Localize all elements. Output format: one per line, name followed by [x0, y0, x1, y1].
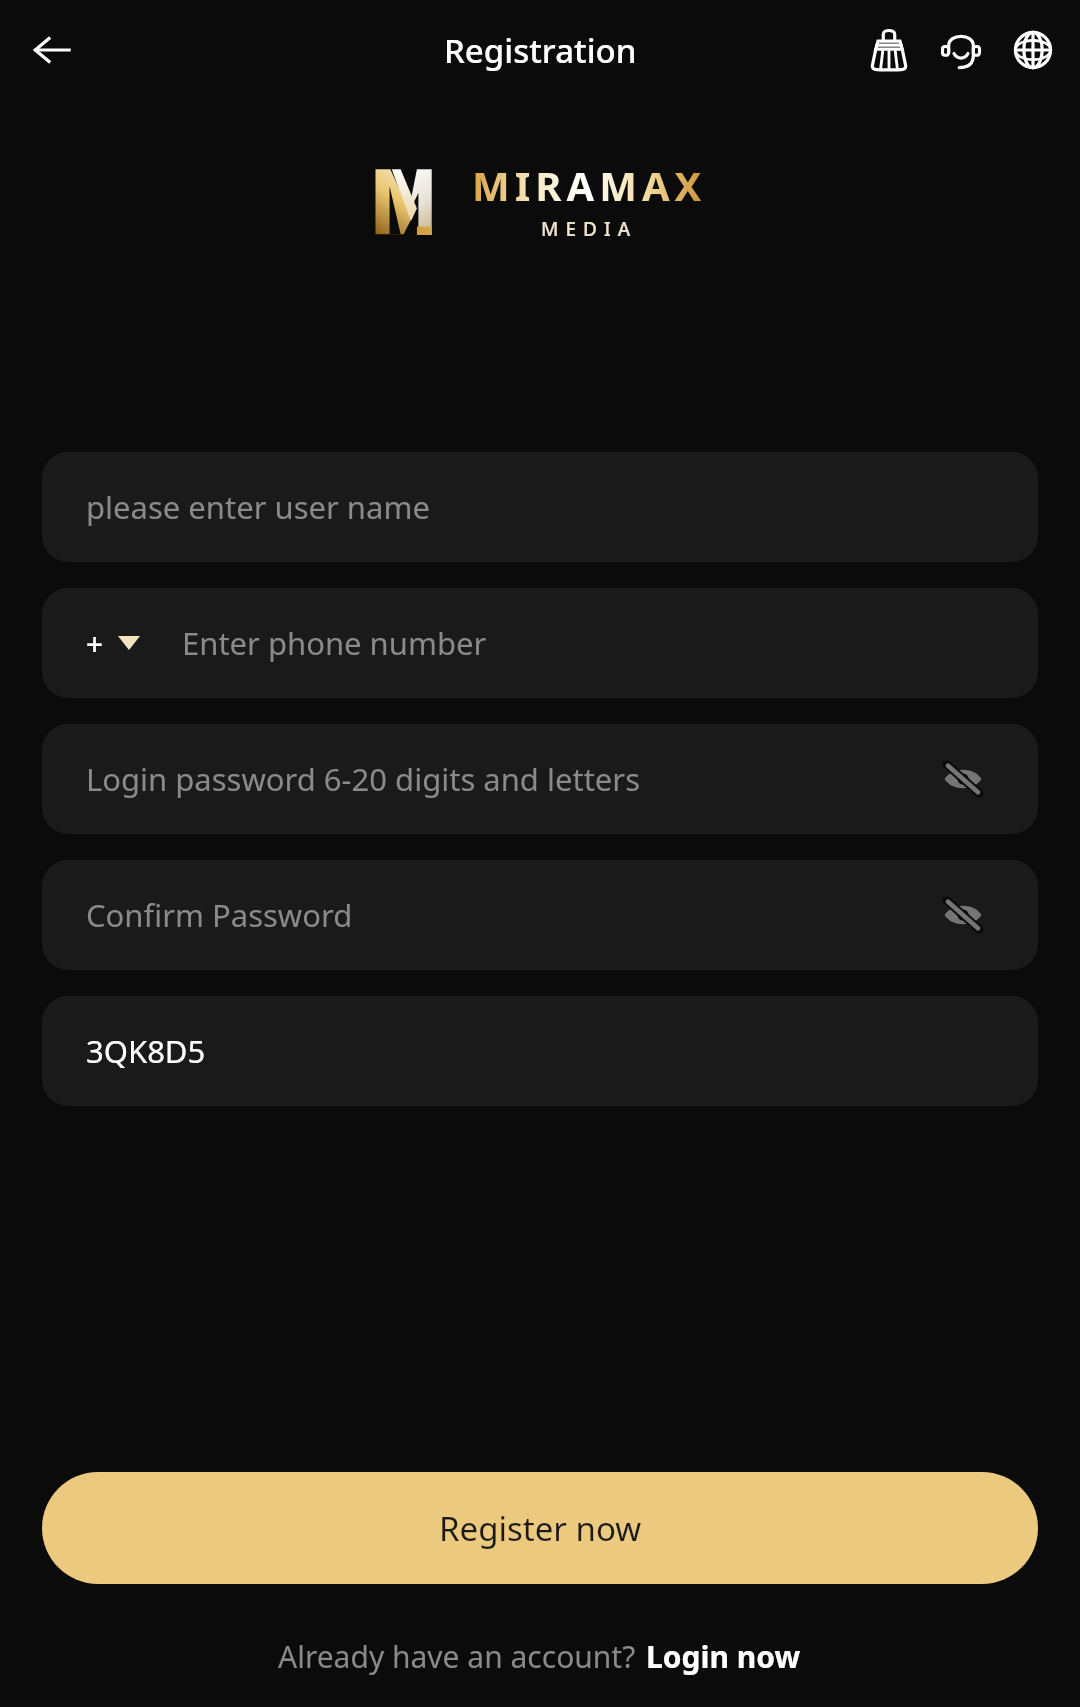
staticText: Enter phone number: [182, 622, 487, 664]
staticText: Login now: [646, 1636, 801, 1677]
button[interactable]: Clear cache: [856, 17, 922, 83]
staticText: +: [86, 623, 104, 664]
staticText: MIRAMAX: [472, 158, 707, 212]
button[interactable]: Confirm Password: [42, 860, 1038, 970]
button[interactable]: Show confirm password: [932, 884, 994, 946]
button[interactable]: Show password: [932, 748, 994, 810]
button[interactable]: Login password 6-20 digits and letters: [42, 724, 1038, 834]
button[interactable]: Back: [18, 16, 86, 84]
button[interactable]: 3QK8D5: [42, 996, 1038, 1106]
button[interactable]: Login now: [644, 1636, 803, 1677]
button[interactable]: Register now: [42, 1472, 1038, 1584]
button[interactable]: +: [42, 588, 1038, 698]
staticText: Registration: [444, 28, 637, 73]
staticText: Already have an account?: [278, 1636, 644, 1677]
staticText: Confirm Password: [86, 894, 353, 936]
staticText: Login password 6-20 digits and letters: [86, 758, 640, 800]
button[interactable]: Language: [1000, 17, 1066, 83]
staticText: 3QK8D5: [86, 1030, 206, 1072]
staticText: MEDIA: [541, 216, 638, 242]
staticText: Register now: [439, 1506, 642, 1551]
button[interactable]: Customer service: [928, 17, 994, 83]
button[interactable]: please enter user name: [42, 452, 1038, 562]
staticText: please enter user name: [86, 486, 430, 528]
